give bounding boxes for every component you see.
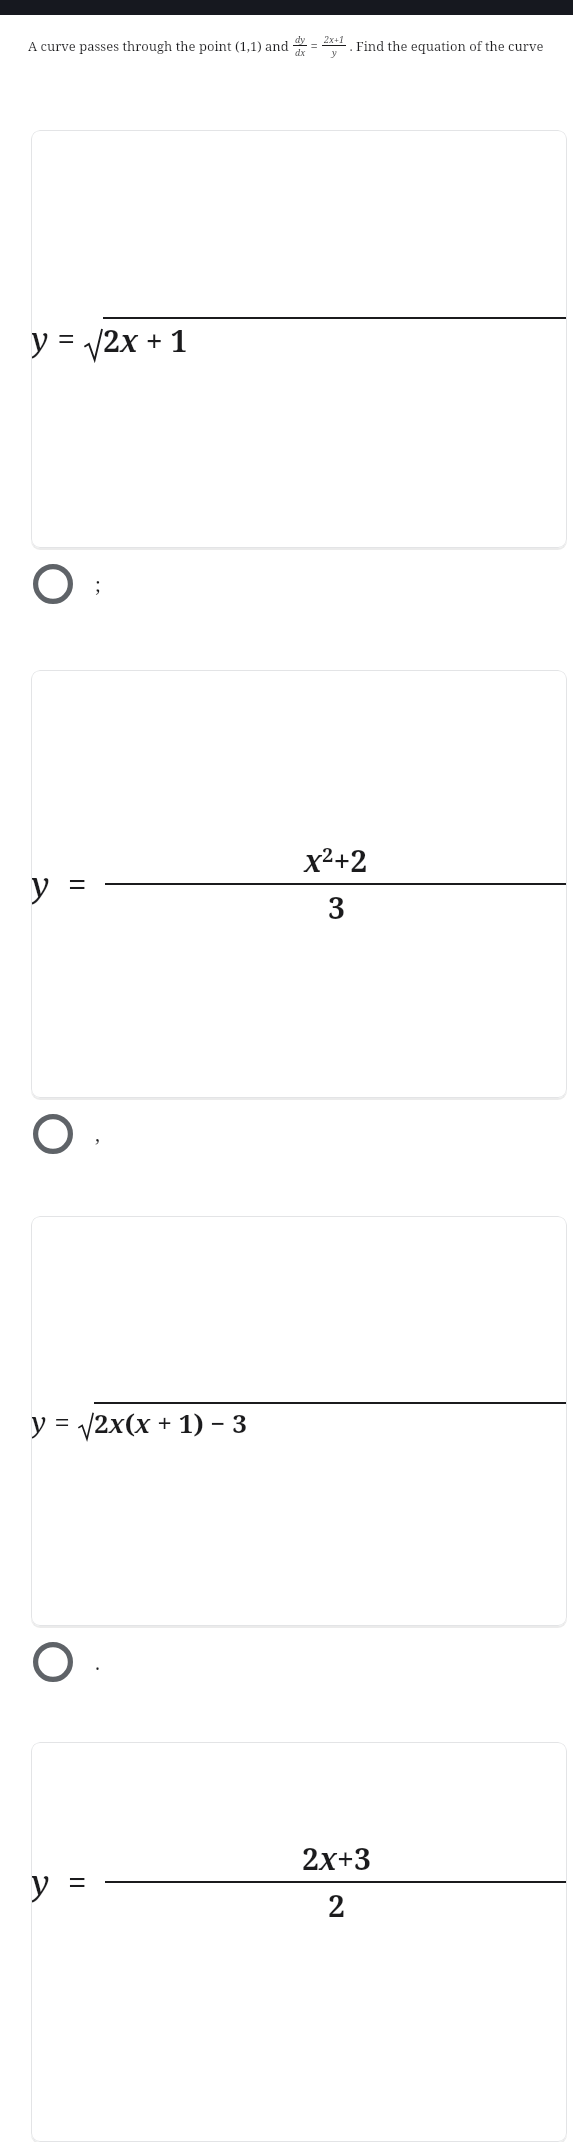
staticText: 2x+1 bbox=[324, 33, 345, 45]
staticText: A curve passes through the point (1,1) a… bbox=[28, 37, 293, 55]
staticText: = bbox=[50, 861, 105, 907]
staticText: y bbox=[332, 46, 337, 58]
staticText: = bbox=[49, 317, 84, 361]
button[interactable]: Select answer option ; bbox=[0, 548, 573, 620]
staticText: ; bbox=[95, 571, 101, 598]
button[interactable]: y bbox=[31, 670, 567, 1098]
staticText: 3 bbox=[328, 887, 345, 928]
staticText: x2+2 bbox=[304, 840, 368, 881]
staticText: 2 bbox=[328, 1885, 345, 1926]
staticText: 2x + 1 bbox=[103, 320, 188, 361]
button[interactable]: Select answer option . bbox=[0, 1626, 573, 1698]
staticText: . bbox=[95, 1649, 100, 1676]
staticText: , bbox=[95, 1121, 100, 1148]
staticText: y bbox=[31, 861, 50, 907]
staticText: dy bbox=[295, 33, 305, 45]
staticText: = bbox=[307, 37, 322, 55]
staticText: 2x+3 bbox=[302, 1838, 371, 1879]
staticText: y bbox=[31, 317, 49, 361]
staticText: y bbox=[31, 1402, 47, 1440]
button[interactable]: y bbox=[31, 1742, 567, 2142]
button[interactable]: y bbox=[31, 1216, 567, 1626]
button[interactable]: y bbox=[31, 130, 567, 548]
staticText: = bbox=[47, 1402, 78, 1440]
staticText: = bbox=[50, 1859, 105, 1905]
button[interactable]: Select answer option , bbox=[0, 1098, 573, 1170]
staticText: dx bbox=[295, 46, 306, 58]
staticText: 2x(x + 1) − 3 bbox=[94, 1405, 247, 1440]
staticText: . Find the equation of the curve bbox=[346, 37, 544, 55]
staticText: y bbox=[31, 1859, 50, 1905]
